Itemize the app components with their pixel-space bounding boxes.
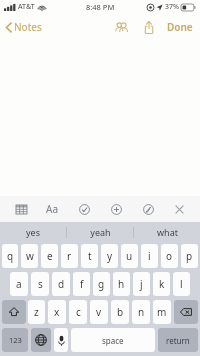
staticText: x bbox=[54, 305, 60, 319]
button[interactable]: return bbox=[158, 328, 198, 352]
button[interactable]: Table bbox=[10, 198, 32, 220]
staticText: e bbox=[47, 249, 53, 263]
button[interactable]: Aa bbox=[41, 198, 63, 220]
button[interactable]: a bbox=[10, 272, 28, 296]
button[interactable]: Collaborate bbox=[110, 16, 132, 38]
button[interactable]: e bbox=[41, 244, 58, 268]
button[interactable]: m bbox=[153, 300, 171, 324]
staticText: w bbox=[26, 249, 34, 263]
staticText: l bbox=[180, 277, 183, 291]
button[interactable]: u bbox=[121, 244, 138, 268]
staticText: space bbox=[102, 335, 124, 346]
button[interactable]: p bbox=[181, 244, 198, 268]
button[interactable]: n bbox=[132, 300, 150, 324]
staticText: Aa bbox=[46, 202, 58, 216]
staticText: d bbox=[58, 277, 65, 291]
staticText: yes bbox=[26, 226, 40, 238]
button[interactable]: b bbox=[111, 300, 129, 324]
staticText: AT&T bbox=[18, 2, 35, 12]
button[interactable]: Add attachment bbox=[105, 198, 127, 220]
button[interactable]: Share bbox=[138, 16, 160, 38]
button[interactable]: r bbox=[61, 244, 78, 268]
button[interactable]: t bbox=[81, 244, 98, 268]
staticText: y bbox=[107, 249, 113, 263]
staticText: what bbox=[157, 226, 178, 238]
button[interactable]: c bbox=[69, 300, 87, 324]
button[interactable]: 123 bbox=[2, 328, 28, 352]
staticText: r bbox=[67, 249, 72, 263]
button[interactable]: g bbox=[93, 272, 110, 296]
button[interactable]: d bbox=[52, 272, 70, 296]
staticText: Done bbox=[167, 20, 193, 34]
button[interactable]: s bbox=[31, 272, 49, 296]
button[interactable]: Notes bbox=[3, 17, 45, 37]
button[interactable]: q bbox=[2, 244, 18, 268]
staticText: 8:48 PM bbox=[86, 2, 115, 12]
staticText: c bbox=[76, 305, 81, 319]
staticText: yeah bbox=[90, 226, 111, 238]
staticText: p bbox=[186, 249, 193, 263]
button[interactable]: yes bbox=[0, 222, 66, 242]
staticText: q bbox=[7, 249, 14, 263]
staticText: i bbox=[148, 249, 151, 263]
button[interactable]: y bbox=[101, 244, 118, 268]
staticText: b bbox=[117, 305, 124, 319]
button[interactable]: Emoji / globe bbox=[31, 328, 51, 352]
staticText: a bbox=[16, 277, 22, 291]
staticText: f bbox=[80, 277, 84, 291]
staticText: k bbox=[159, 277, 165, 291]
button[interactable]: l bbox=[173, 272, 190, 296]
button[interactable]: what bbox=[134, 222, 200, 242]
staticText: return bbox=[166, 335, 190, 346]
button[interactable]: i bbox=[141, 244, 158, 268]
staticText: n bbox=[138, 305, 145, 319]
button[interactable]: z bbox=[28, 300, 45, 324]
staticText: o bbox=[166, 249, 173, 263]
button[interactable]: Done bbox=[165, 17, 195, 37]
staticText: g bbox=[98, 277, 105, 291]
button[interactable]: Close keyboard bbox=[168, 198, 190, 220]
button[interactable]: v bbox=[90, 300, 108, 324]
staticText: Notes bbox=[14, 20, 42, 34]
button[interactable]: x bbox=[48, 300, 66, 324]
staticText: u bbox=[126, 249, 133, 263]
button[interactable]: Backspace bbox=[174, 300, 198, 324]
button[interactable]: space bbox=[71, 328, 155, 352]
button[interactable]: Markup bbox=[137, 198, 159, 220]
staticText: m bbox=[157, 305, 167, 319]
staticText: v bbox=[96, 305, 102, 319]
staticText: s bbox=[38, 277, 43, 291]
staticText: h bbox=[118, 277, 125, 291]
button[interactable]: k bbox=[153, 272, 170, 296]
staticText: t bbox=[88, 249, 92, 263]
staticText: z bbox=[34, 305, 39, 319]
button[interactable]: w bbox=[21, 244, 38, 268]
button[interactable]: h bbox=[113, 272, 130, 296]
button[interactable]: f bbox=[73, 272, 90, 296]
button[interactable]: Dictation bbox=[54, 328, 68, 352]
staticText: 37% bbox=[165, 2, 179, 12]
button[interactable]: Checklist bbox=[73, 198, 95, 220]
staticText: 123 bbox=[9, 335, 22, 345]
button[interactable]: j bbox=[133, 272, 150, 296]
button[interactable]: yeah bbox=[67, 222, 133, 242]
button[interactable]: Shift bbox=[2, 300, 26, 324]
staticText: j bbox=[140, 277, 143, 291]
button[interactable]: o bbox=[161, 244, 178, 268]
